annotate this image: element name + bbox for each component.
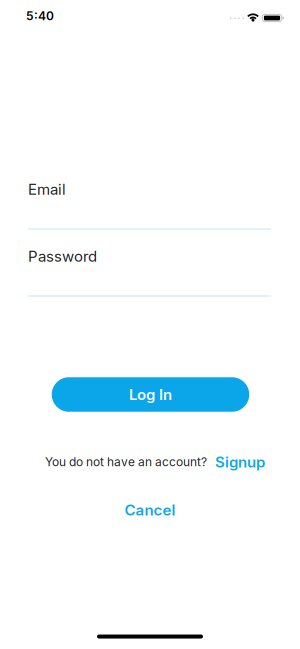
button[interactable]: Log In (52, 377, 249, 412)
button[interactable]: Password (28, 247, 271, 296)
staticText: Log In (129, 386, 172, 403)
staticText: Cancel (124, 501, 175, 519)
staticText: You do not have an account? (45, 455, 207, 469)
staticText: Password (28, 247, 97, 265)
staticText: Signup (215, 453, 265, 471)
button[interactable]: Cancel (124, 501, 175, 519)
staticText: 5:40 (26, 9, 54, 23)
button[interactable]: Email (28, 180, 271, 229)
button[interactable]: Signup (215, 453, 265, 471)
staticText: Email (28, 180, 66, 198)
